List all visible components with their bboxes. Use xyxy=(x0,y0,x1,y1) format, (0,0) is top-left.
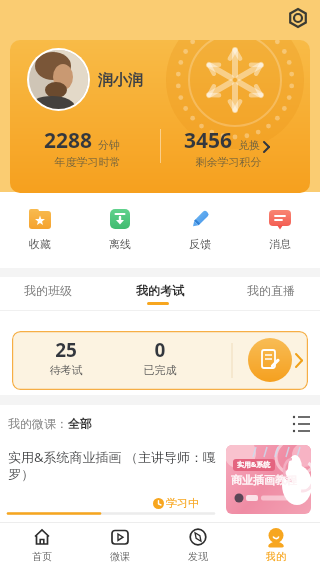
staticText: 学习中 xyxy=(166,496,212,510)
staticText: 剩余学习积分 xyxy=(166,155,291,169)
staticText: 25 xyxy=(26,337,106,363)
button[interactable]: 反馈 xyxy=(170,200,230,252)
staticText: 微课 xyxy=(90,550,150,563)
staticText: 润小润 xyxy=(98,71,178,90)
button[interactable]: 首页 xyxy=(12,522,72,568)
button[interactable]: 收藏 xyxy=(10,200,70,252)
staticText: 收藏 xyxy=(10,237,70,251)
button[interactable]: 3456 xyxy=(184,126,272,155)
staticText: 全部 xyxy=(68,416,92,431)
staticText: 年度学习时常 xyxy=(25,155,150,169)
staticText: 0 xyxy=(120,337,200,363)
staticText: 3456 xyxy=(184,126,233,155)
staticText: 兑换 xyxy=(238,138,260,152)
staticText: 消息 xyxy=(250,237,310,251)
staticText: 首页 xyxy=(12,550,72,563)
staticText: 我的直播 xyxy=(231,283,311,298)
staticText: 实用&系统商业插画 （主讲导师：嘎罗） xyxy=(8,448,220,483)
button[interactable]: 离线 xyxy=(90,200,150,252)
button[interactable]: 我的班级 xyxy=(8,277,88,310)
staticText: 我的班级 xyxy=(8,283,88,298)
staticText: 我的考试 xyxy=(120,283,200,298)
button[interactable]: 我的 xyxy=(246,522,306,568)
staticText: 已完成 xyxy=(120,363,200,377)
button[interactable]: 微课 xyxy=(90,522,150,568)
button[interactable]: 我的直播 xyxy=(231,277,311,310)
button[interactable]: 实用&系统商业插画 （主讲导师：嘎罗） xyxy=(0,440,320,522)
button[interactable]: 我的考试 xyxy=(120,277,200,310)
staticText: 离线 xyxy=(90,237,150,251)
button[interactable] xyxy=(285,5,311,31)
staticText: 发现 xyxy=(168,550,228,563)
staticText: 分钟 xyxy=(98,138,120,152)
button[interactable]: 发现 xyxy=(168,522,228,568)
staticText: 反馈 xyxy=(170,237,230,251)
staticText: 待考试 xyxy=(26,363,106,377)
button[interactable]: 消息 xyxy=(250,200,310,252)
staticText: 实用&系统 xyxy=(237,460,271,470)
staticText: 商业插画教程 xyxy=(231,473,297,487)
staticText: 我的 xyxy=(246,550,306,563)
staticText: 我的微课： xyxy=(8,416,68,431)
button[interactable] xyxy=(27,48,90,111)
staticText: 2288 xyxy=(44,126,93,155)
button[interactable]: 25 xyxy=(12,331,308,390)
button[interactable] xyxy=(288,412,314,438)
